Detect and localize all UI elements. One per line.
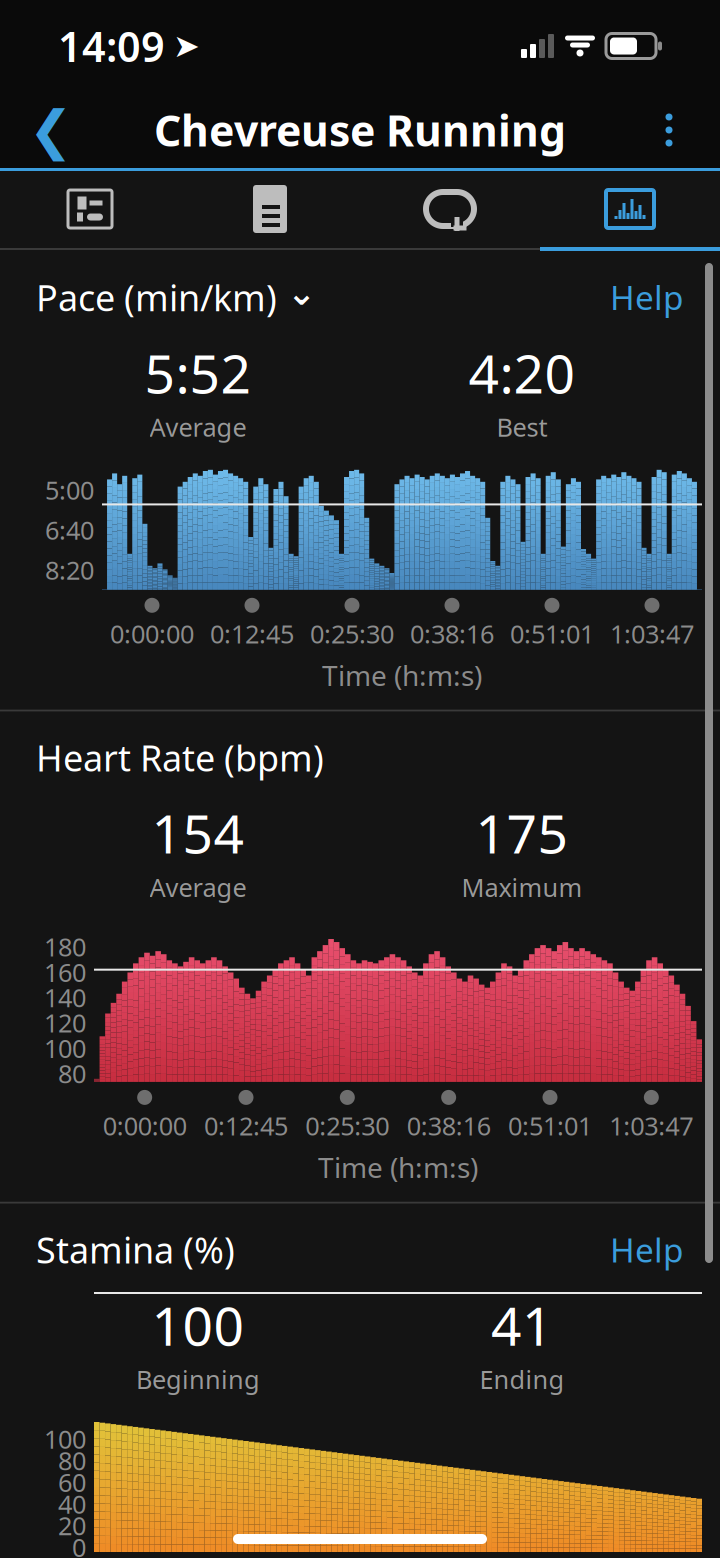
staticText: 0:38:16: [410, 617, 494, 650]
staticText: 160: [44, 955, 86, 980]
staticText: 140: [44, 981, 86, 1006]
staticText: Help: [610, 275, 684, 319]
staticText: 60: [58, 1465, 86, 1487]
staticText: 5:00: [45, 473, 94, 507]
button[interactable]: Map: [0, 187, 180, 231]
button[interactable]: Charts: [540, 187, 720, 231]
staticText: Chevreuse Running: [154, 102, 566, 158]
staticText: 14:09: [58, 19, 165, 73]
staticText: 0:51:01: [508, 1109, 592, 1142]
button[interactable]: Stamina (%): [36, 1226, 235, 1273]
staticText: 100: [44, 1422, 86, 1444]
staticText: 1:03:47: [610, 617, 694, 650]
staticText: 154: [151, 797, 244, 868]
staticText: 100: [151, 1289, 244, 1360]
staticText: 0:12:45: [204, 1109, 288, 1142]
button[interactable]: Laps: [360, 187, 540, 231]
staticText: 175: [475, 797, 568, 868]
staticText: 4:20: [468, 337, 575, 408]
staticText: 20: [58, 1509, 86, 1530]
staticText: ❮: [28, 100, 73, 160]
staticText: Maximum: [461, 870, 582, 904]
staticText: 41: [491, 1289, 553, 1360]
staticText: 40: [58, 1487, 86, 1509]
staticText: 0:00:00: [103, 1109, 187, 1142]
staticText: ⌄: [287, 273, 316, 312]
button[interactable]: More options: [634, 95, 704, 165]
staticText: Best: [496, 410, 547, 444]
button[interactable]: Help: [610, 275, 684, 319]
staticText: 0:38:16: [407, 1109, 491, 1142]
staticText: 80: [58, 1444, 86, 1465]
button[interactable]: Back: [16, 95, 86, 165]
staticText: 100: [44, 1031, 86, 1056]
staticText: Time (h:m:s): [322, 656, 482, 694]
staticText: Average: [149, 410, 246, 444]
staticText: Stamina (%): [36, 1226, 235, 1273]
staticText: 0: [72, 1530, 86, 1552]
staticText: ➤: [173, 28, 200, 64]
staticText: 5:52: [144, 337, 251, 408]
staticText: Pace (min/km): [36, 273, 277, 321]
button[interactable]: Heart Rate (bpm): [36, 734, 324, 781]
staticText: Time (h:m:s): [318, 1148, 478, 1186]
staticText: 8:20: [45, 553, 94, 587]
staticText: 0:00:00: [110, 617, 194, 650]
button[interactable]: Details: [180, 184, 360, 234]
staticText: Heart Rate (bpm): [36, 734, 324, 781]
staticText: Beginning: [136, 1362, 260, 1396]
staticText: 0:25:30: [310, 617, 394, 650]
button[interactable]: Help: [610, 1227, 684, 1272]
staticText: 80: [58, 1057, 86, 1082]
staticText: 180: [44, 930, 86, 955]
staticText: 0:25:30: [305, 1109, 389, 1142]
staticText: 6:40: [45, 513, 94, 547]
staticText: 1:03:47: [609, 1109, 693, 1142]
staticText: Help: [610, 1227, 684, 1272]
staticText: 120: [44, 1006, 86, 1031]
staticText: 0:12:45: [210, 617, 294, 650]
staticText: Average: [149, 870, 246, 904]
staticText: 0:51:01: [510, 617, 594, 650]
button[interactable]: Pace (min/km): [36, 273, 316, 321]
staticText: Ending: [479, 1362, 564, 1396]
